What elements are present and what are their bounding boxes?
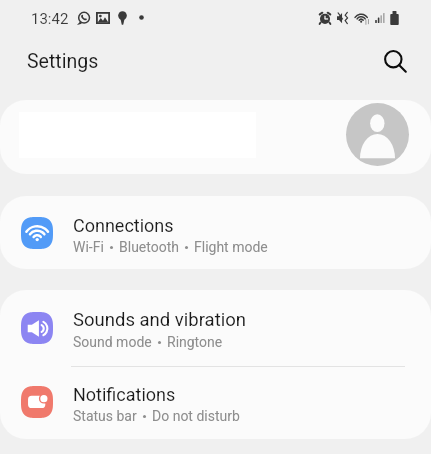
button[interactable]: Connections bbox=[0, 196, 431, 269]
button[interactable]: Notifications bbox=[0, 365, 431, 439]
button[interactable]: Search bbox=[376, 43, 414, 81]
button[interactable]: Sounds and vibration bbox=[0, 290, 431, 365]
staticText: Connections bbox=[73, 215, 174, 236]
button[interactable] bbox=[0, 100, 431, 174]
staticText: 13:42 bbox=[31, 10, 69, 28]
staticText: Do not disturb bbox=[152, 408, 240, 424]
staticText: Bluetooth bbox=[119, 239, 179, 255]
staticText: Notifications bbox=[73, 384, 176, 405]
staticText: Wi-Fi bbox=[73, 239, 104, 255]
staticText: Ringtone bbox=[167, 334, 223, 350]
staticText: Sounds and vibration bbox=[73, 309, 246, 331]
staticText: Flight mode bbox=[194, 239, 268, 255]
staticText: Settings bbox=[27, 50, 99, 73]
staticText: Sound mode bbox=[73, 334, 152, 350]
staticText: Status bar bbox=[73, 408, 137, 424]
